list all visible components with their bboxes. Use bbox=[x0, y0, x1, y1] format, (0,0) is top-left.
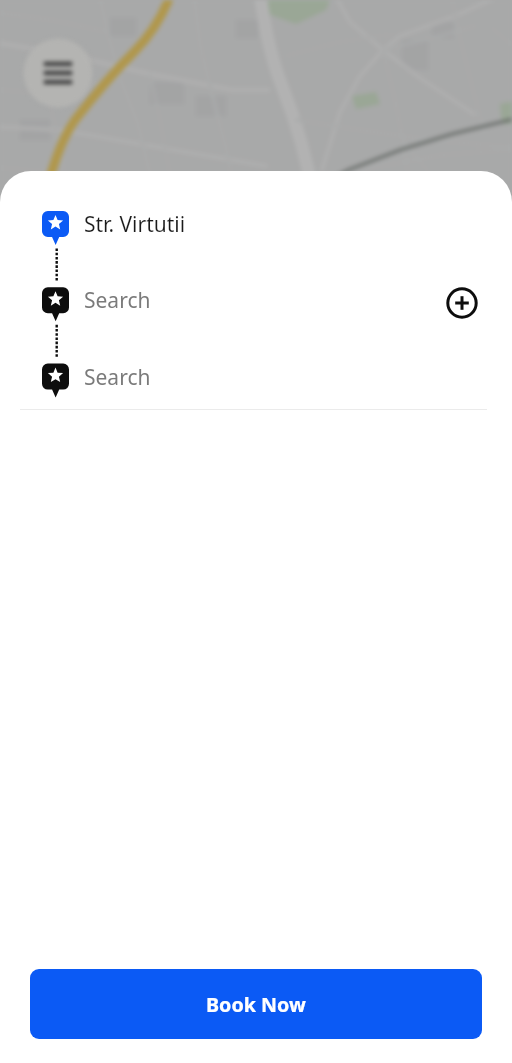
button[interactable]: Str. Virtutii bbox=[0, 197, 512, 251]
staticText: Search bbox=[84, 286, 151, 315]
staticText: Str. Virtutii bbox=[84, 210, 186, 239]
staticText: Book Now bbox=[206, 991, 306, 1018]
button[interactable]: Search bbox=[0, 350, 512, 404]
button[interactable]: Add stop bbox=[444, 285, 479, 320]
button[interactable]: Search bbox=[0, 273, 512, 327]
staticText: Search bbox=[84, 363, 151, 392]
button[interactable]: Book Now bbox=[30, 969, 482, 1039]
button[interactable]: Menu bbox=[17, 32, 99, 114]
